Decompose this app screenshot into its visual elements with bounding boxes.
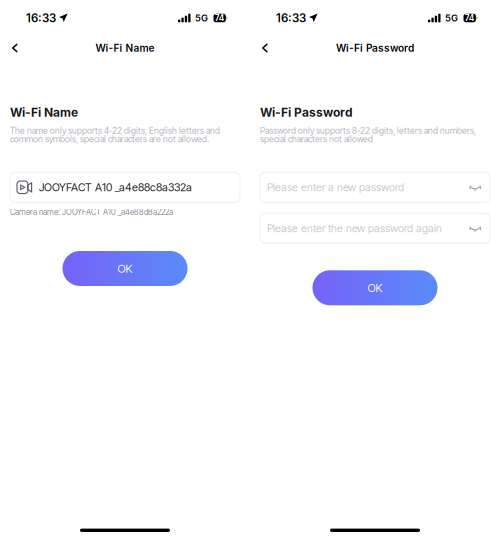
staticText: Wi-Fi Name bbox=[10, 105, 78, 119]
staticText: 16:33 bbox=[276, 11, 306, 25]
staticText: Camera name: JOOYFACT A10 _a4e88d8a222a bbox=[10, 207, 173, 217]
button[interactable]: Show password bbox=[470, 181, 481, 193]
staticText: The name only supports 4-22 digits, Engl… bbox=[10, 126, 220, 143]
button[interactable]: Back bbox=[4, 38, 26, 58]
staticText: 5G bbox=[195, 12, 208, 24]
staticText: 5G bbox=[445, 12, 458, 24]
staticText: Please enter the new password again bbox=[267, 222, 442, 235]
staticText: Wi-Fi Name bbox=[95, 42, 154, 54]
button[interactable]: Show password bbox=[470, 222, 481, 234]
staticText: 74 bbox=[215, 13, 225, 23]
staticText: 74 bbox=[465, 13, 475, 23]
staticText: JOOYFACT A10 _a4e88c8a332a bbox=[39, 181, 192, 194]
staticText: OK bbox=[367, 281, 382, 295]
staticText: Wi-Fi Password bbox=[260, 105, 353, 119]
staticText: Wi-Fi Password bbox=[336, 42, 414, 54]
button[interactable]: OK bbox=[62, 251, 187, 286]
button[interactable]: OK bbox=[312, 270, 437, 305]
staticText: OK bbox=[117, 261, 132, 275]
button[interactable]: Back bbox=[254, 38, 276, 58]
staticText: Please enter a new password bbox=[267, 181, 404, 194]
staticText: Password only supports 8-22 digits, lett… bbox=[260, 126, 476, 143]
staticText: 16:33 bbox=[26, 11, 56, 25]
